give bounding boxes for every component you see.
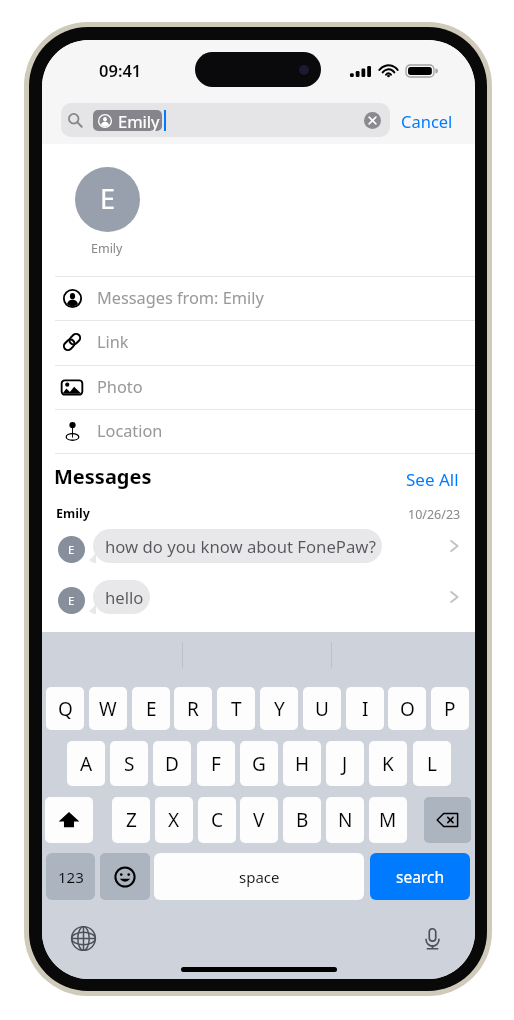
button[interactable]: Shift xyxy=(45,797,93,843)
button[interactable]: W xyxy=(89,687,127,730)
button[interactable]: Emoji keyboard xyxy=(100,853,150,900)
staticText: B xyxy=(296,807,309,833)
staticText: Emily xyxy=(118,110,160,131)
button[interactable]: S xyxy=(110,741,148,786)
staticText: W xyxy=(99,696,117,722)
button[interactable]: 123 xyxy=(46,853,95,900)
button[interactable]: L xyxy=(413,741,451,786)
staticText: Location xyxy=(97,420,163,442)
button[interactable]: V xyxy=(240,797,278,843)
staticText: U xyxy=(315,696,329,722)
button[interactable]: space xyxy=(154,853,364,900)
staticText: T xyxy=(231,696,242,722)
staticText: G xyxy=(252,751,266,777)
button[interactable]: search xyxy=(370,853,470,900)
staticText: Y xyxy=(274,696,285,722)
button[interactable]: G xyxy=(240,741,278,786)
button[interactable]: N xyxy=(326,797,364,843)
button[interactable]: Dictate xyxy=(419,925,446,952)
button[interactable]: I xyxy=(346,687,384,730)
button[interactable]: Change keyboard xyxy=(70,925,97,952)
button[interactable]: Messages from: Emily xyxy=(42,276,475,320)
staticText: E xyxy=(68,593,75,609)
button[interactable]: K xyxy=(369,741,407,786)
staticText: R xyxy=(187,696,199,722)
staticText: Emily xyxy=(91,240,123,257)
staticText: D xyxy=(165,751,179,777)
button[interactable]: R xyxy=(174,687,212,730)
button[interactable]: B xyxy=(283,797,321,843)
button[interactable]: D xyxy=(153,741,191,786)
staticText: K xyxy=(382,751,394,777)
staticText: C xyxy=(211,807,224,833)
button[interactable]: U xyxy=(303,687,341,730)
staticText: O xyxy=(400,696,415,722)
button[interactable]: Cancel xyxy=(401,110,453,132)
staticText: Z xyxy=(126,807,137,833)
button[interactable]: X xyxy=(155,797,193,843)
button[interactable]: Clear text xyxy=(364,112,381,129)
staticText: Photo xyxy=(97,376,143,398)
button[interactable]: Q xyxy=(46,687,84,730)
button[interactable]: C xyxy=(198,797,236,843)
button[interactable]: Location xyxy=(42,409,475,453)
button[interactable]: E xyxy=(132,687,170,730)
button[interactable]: Link xyxy=(42,320,475,364)
button[interactable]: T xyxy=(217,687,255,730)
staticText: search xyxy=(396,866,444,887)
button[interactable]: F xyxy=(197,741,235,786)
staticText: M xyxy=(379,807,397,833)
button[interactable]: Photo xyxy=(42,365,475,409)
button[interactable]: Backspace xyxy=(424,797,471,843)
staticText: P xyxy=(444,696,456,722)
button[interactable]: Y xyxy=(260,687,298,730)
button[interactable]: E xyxy=(75,167,140,232)
button[interactable]: See All xyxy=(406,468,459,491)
staticText: I xyxy=(362,696,369,722)
button[interactable]: E xyxy=(42,529,475,563)
staticText: 09:41 xyxy=(99,59,142,81)
button[interactable]: O xyxy=(388,687,426,730)
staticText: Emily xyxy=(56,505,90,522)
staticText: Messages from: Emily xyxy=(97,287,264,309)
staticText: E xyxy=(68,542,75,558)
button[interactable]: P xyxy=(431,687,469,730)
staticText: F xyxy=(211,751,221,777)
staticText: 10/26/23 xyxy=(408,506,461,523)
button[interactable]: E xyxy=(42,580,475,614)
staticText: V xyxy=(253,807,265,833)
staticText: A xyxy=(80,751,93,777)
staticText: hello xyxy=(105,586,144,609)
staticText: Messages xyxy=(54,463,152,490)
button[interactable]: J xyxy=(326,741,364,786)
button[interactable]: A xyxy=(67,741,105,786)
staticText: Link xyxy=(97,331,129,353)
staticText: J xyxy=(342,751,348,777)
button[interactable]: Emily xyxy=(61,103,390,137)
staticText: H xyxy=(295,751,310,777)
staticText: how do you know about FonePaw? xyxy=(105,535,376,558)
button[interactable]: Z xyxy=(112,797,150,843)
staticText: N xyxy=(338,807,353,833)
staticText: Q xyxy=(58,696,73,722)
button[interactable]: H xyxy=(283,741,321,786)
staticText: E xyxy=(146,696,157,722)
staticText: S xyxy=(124,751,135,777)
staticText: X xyxy=(168,807,180,833)
button[interactable]: M xyxy=(369,797,407,843)
staticText: space xyxy=(239,867,280,887)
staticText: L xyxy=(427,751,437,777)
staticText: E xyxy=(100,180,116,217)
staticText: See All xyxy=(406,468,459,491)
staticText: 123 xyxy=(58,867,84,887)
staticText: Cancel xyxy=(401,110,453,132)
